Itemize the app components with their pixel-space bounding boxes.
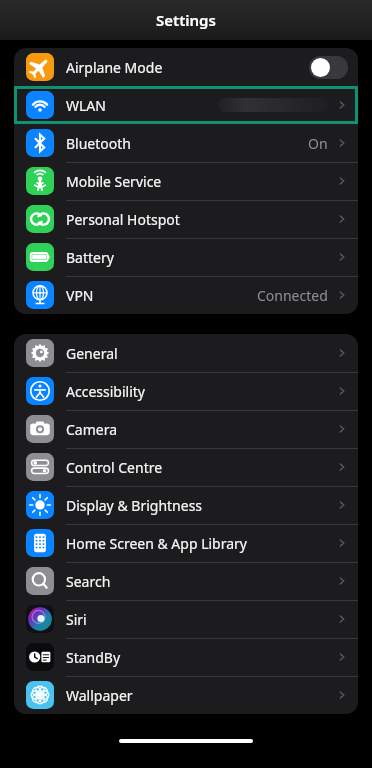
button[interactable]: Camera	[14, 410, 358, 448]
staticText: Accessibility	[66, 382, 145, 401]
staticText: WLAN	[66, 96, 106, 115]
button[interactable]: Wallpaper	[14, 676, 358, 714]
staticText: Settings	[156, 10, 216, 30]
staticText: Battery	[66, 248, 114, 267]
button[interactable]: Battery	[14, 238, 358, 276]
button[interactable]: VPN	[14, 276, 358, 314]
button[interactable]: StandBy	[14, 638, 358, 676]
button[interactable]: Home Screen & App Library	[14, 524, 358, 562]
button[interactable]: WLAN	[14, 86, 358, 124]
staticText: Wallpaper	[66, 686, 133, 705]
staticText: Bluetooth	[66, 134, 131, 153]
staticText: Mobile Service	[66, 172, 162, 191]
staticText: Connected	[257, 286, 328, 305]
button[interactable]: Airplane Mode	[14, 48, 358, 86]
button[interactable]: Airplane Mode toggle	[309, 56, 348, 79]
button[interactable]: Accessibility	[14, 372, 358, 410]
staticText: VPN	[66, 286, 94, 305]
button[interactable]: Personal Hotspot	[14, 200, 358, 238]
staticText: Search	[66, 572, 111, 591]
staticText: Display & Brightness	[66, 496, 203, 515]
button[interactable]: General	[14, 334, 358, 372]
staticText: Home Screen & App Library	[66, 534, 247, 553]
staticText: Siri	[66, 610, 87, 629]
staticText: StandBy	[66, 648, 121, 667]
staticText: On	[308, 134, 328, 153]
staticText: Camera	[66, 420, 118, 439]
button[interactable]: Mobile Service	[14, 162, 358, 200]
button[interactable]: Siri	[14, 600, 358, 638]
staticText: General	[66, 344, 118, 363]
button[interactable]: Control Centre	[14, 448, 358, 486]
button[interactable]: Search	[14, 562, 358, 600]
button[interactable]: Display & Brightness	[14, 486, 358, 524]
staticText: Control Centre	[66, 458, 163, 477]
staticText: Airplane Mode	[66, 58, 163, 77]
button[interactable]: Bluetooth	[14, 124, 358, 162]
staticText: Personal Hotspot	[66, 210, 180, 229]
